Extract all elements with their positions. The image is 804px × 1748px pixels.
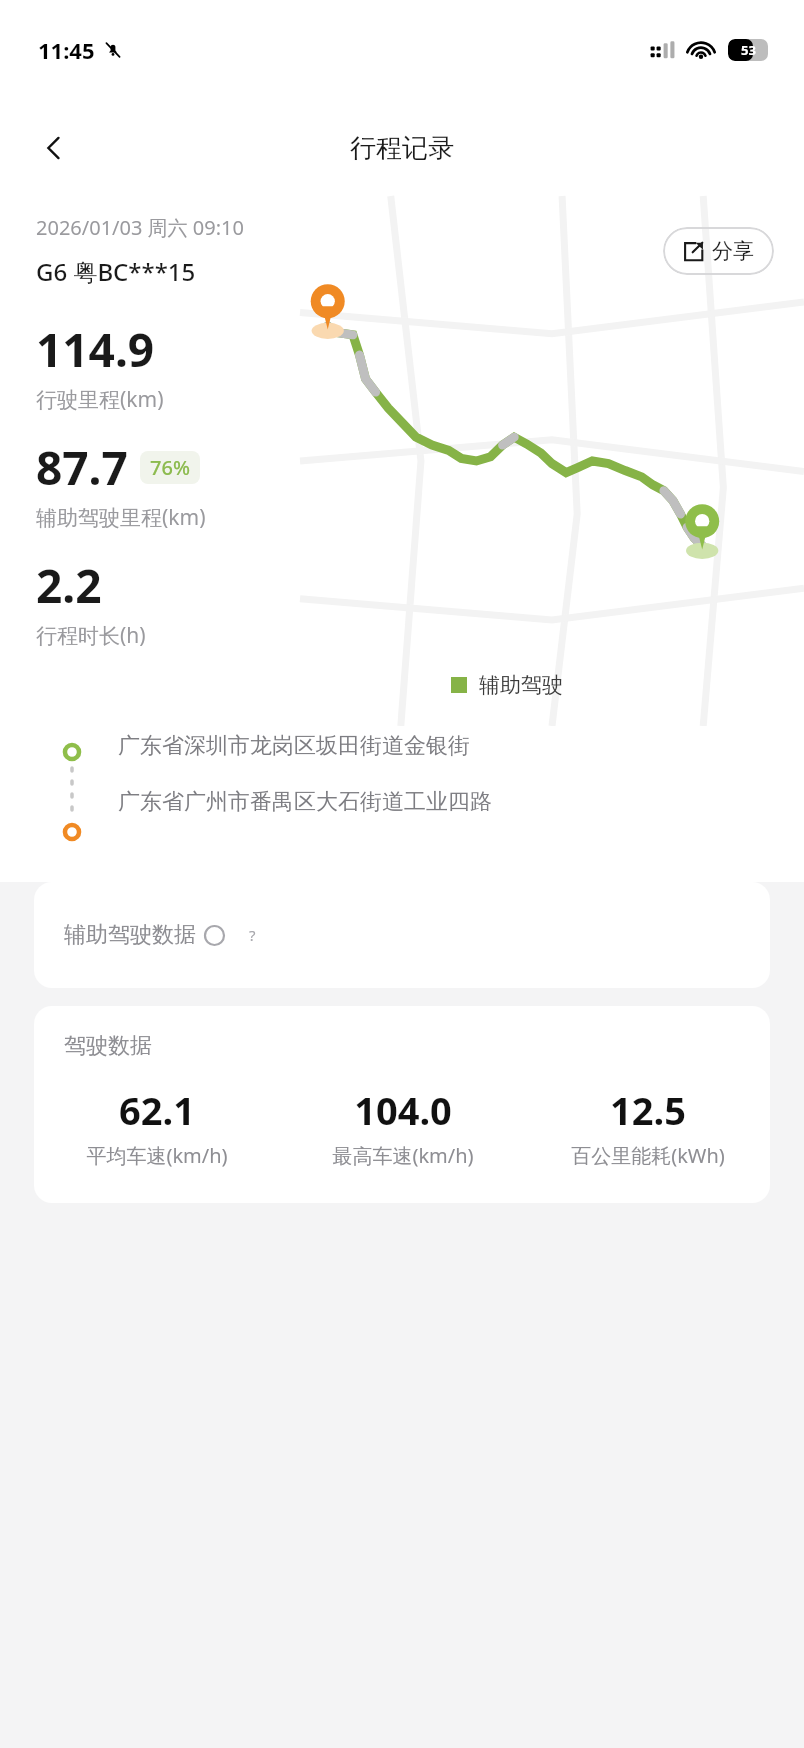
- staticText: ?: [249, 925, 256, 945]
- button[interactable]: Back: [26, 120, 82, 176]
- staticText: 最高车速(km/h): [332, 1142, 474, 1169]
- staticText: 分享: [712, 238, 754, 264]
- staticText: 行程时长(h): [36, 621, 146, 650]
- staticText: 行程记录: [350, 132, 454, 165]
- button[interactable]: 分享: [663, 227, 774, 275]
- button[interactable]: 辅助驾驶数据: [34, 882, 770, 988]
- staticText: 驾驶数据: [64, 1032, 152, 1060]
- staticText: 辅助驾驶数据: [64, 921, 196, 949]
- staticText: 平均车速(km/h): [86, 1142, 228, 1169]
- staticText: 104.0: [354, 1084, 452, 1136]
- staticText: 行驶里程(km): [36, 385, 164, 414]
- staticText: 2.2: [36, 554, 102, 617]
- staticText: G6 粤BC***15: [36, 255, 196, 288]
- staticText: 辅助驾驶: [479, 672, 563, 698]
- staticText: 2026/01/03 周六 09:10: [36, 214, 244, 241]
- staticText: 114.9: [36, 318, 155, 381]
- staticText: 11:45: [38, 35, 95, 65]
- staticText: 辅助驾驶里程(km): [36, 503, 206, 532]
- staticText: 87.7: [36, 436, 128, 499]
- staticText: 62.1: [119, 1084, 195, 1136]
- staticText: 53: [741, 41, 756, 59]
- staticText: 76%: [150, 454, 190, 481]
- staticText: 百公里能耗(kWh): [571, 1142, 725, 1169]
- staticText: 广东省深圳市龙岗区坂田街道金银街: [118, 732, 470, 760]
- button[interactable]: 驾驶数据: [34, 1006, 770, 1203]
- staticText: 12.5: [610, 1084, 686, 1136]
- staticText: 广东省广州市番禺区大石街道工业四路: [118, 788, 492, 816]
